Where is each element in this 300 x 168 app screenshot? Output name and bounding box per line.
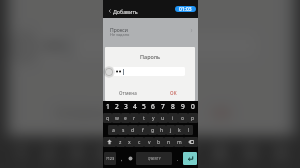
button[interactable]: q xyxy=(103,113,112,123)
button[interactable]: . xyxy=(174,152,181,165)
staticText: x xyxy=(128,139,131,146)
button[interactable]: Shift xyxy=(103,137,116,147)
button[interactable]: k xyxy=(175,125,184,135)
staticText: 6 xyxy=(151,102,155,111)
staticText: z xyxy=(119,139,122,146)
button[interactable]: Отмена xyxy=(117,88,139,98)
button[interactable]: y xyxy=(148,113,158,123)
button[interactable]: m xyxy=(174,137,184,147)
button[interactable]: ?123 xyxy=(104,152,116,165)
staticText: 2 xyxy=(115,102,119,111)
button[interactable]: Прокси xyxy=(103,18,198,44)
button[interactable]: 7 xyxy=(158,101,168,112)
staticText: g xyxy=(151,127,155,134)
button[interactable]: OK xyxy=(168,88,179,98)
button[interactable]: 5 xyxy=(139,101,148,112)
button[interactable]: z xyxy=(116,137,125,147)
staticText: h xyxy=(160,127,164,134)
button[interactable]: c xyxy=(134,137,144,147)
staticText: n xyxy=(167,139,171,146)
staticText: m xyxy=(177,139,182,146)
button[interactable]: v xyxy=(144,137,154,147)
button[interactable]: 1 xyxy=(6,136,34,168)
button[interactable]: 7 xyxy=(174,136,205,168)
button[interactable]: 2 xyxy=(112,101,121,112)
staticText: y xyxy=(152,115,155,122)
button[interactable]: 0 xyxy=(266,136,297,168)
staticText: 9 xyxy=(181,102,185,111)
staticText: OK xyxy=(170,90,177,96)
staticText: 01:03 xyxy=(179,6,192,12)
staticText: f xyxy=(142,127,144,134)
button[interactable]: 6 xyxy=(148,101,158,112)
button[interactable]: 8 xyxy=(205,136,236,168)
staticText: i xyxy=(172,115,174,122)
button[interactable]: Отмена xyxy=(49,96,116,127)
staticText: Добавить xyxy=(113,8,138,15)
staticText: v xyxy=(148,139,151,146)
staticText: QWERTY xyxy=(148,157,161,161)
button[interactable]: Back xyxy=(104,5,115,17)
button[interactable]: d xyxy=(128,125,138,135)
button[interactable]: a xyxy=(108,125,118,135)
staticText: 0 xyxy=(191,102,195,111)
staticText: 5 xyxy=(125,139,138,167)
button[interactable]: r xyxy=(130,113,139,123)
button[interactable]: f xyxy=(138,125,148,135)
staticText: Пароль xyxy=(12,0,288,10)
button[interactable]: s xyxy=(118,125,128,135)
staticText: , xyxy=(121,156,123,162)
button[interactable]: , xyxy=(118,152,125,165)
button[interactable]: 4 xyxy=(130,101,139,112)
staticText: s xyxy=(122,127,125,134)
staticText: l xyxy=(188,127,190,134)
button[interactable]: l xyxy=(184,125,193,135)
staticText: 3 xyxy=(124,102,128,111)
button[interactable]: 5 xyxy=(116,136,144,168)
staticText: 1 xyxy=(106,102,110,111)
staticText: a xyxy=(112,127,115,134)
staticText: 9 xyxy=(245,139,257,167)
button[interactable] xyxy=(113,67,185,76)
button[interactable]: 6 xyxy=(144,136,174,168)
button[interactable]: Emoji xyxy=(127,152,134,165)
button[interactable]: QWERTY xyxy=(136,152,172,165)
button[interactable]: e xyxy=(121,113,130,123)
button[interactable]: t xyxy=(139,113,148,123)
button[interactable]: 01:03 xyxy=(175,6,196,12)
button[interactable]: 8 xyxy=(168,101,178,112)
button[interactable]: i xyxy=(168,113,178,123)
staticText: d xyxy=(131,127,135,134)
button[interactable] xyxy=(37,32,257,59)
button[interactable]: 1 xyxy=(103,101,112,112)
button[interactable]: j xyxy=(166,125,175,135)
button[interactable]: g xyxy=(148,125,157,135)
button[interactable]: h xyxy=(157,125,166,135)
staticText: . xyxy=(177,156,179,162)
button[interactable]: x xyxy=(125,137,134,147)
button[interactable]: p xyxy=(188,113,198,123)
staticText: c xyxy=(138,139,141,146)
staticText: 7 xyxy=(161,102,165,111)
button[interactable]: 2 xyxy=(34,136,61,168)
button[interactable]: 9 xyxy=(178,101,188,112)
staticText: u xyxy=(161,115,165,122)
button[interactable]: 0 xyxy=(188,101,198,112)
button[interactable]: o xyxy=(178,113,188,123)
button[interactable]: u xyxy=(158,113,168,123)
button[interactable]: Backspace xyxy=(184,137,198,147)
staticText: 4 xyxy=(133,102,137,111)
staticText: Пароль xyxy=(105,53,195,60)
button[interactable]: 3 xyxy=(121,101,130,112)
button[interactable]: Enter xyxy=(183,152,197,165)
button[interactable]: b xyxy=(154,137,164,147)
button[interactable]: w xyxy=(112,113,121,123)
staticText: o xyxy=(181,115,185,122)
button[interactable]: 4 xyxy=(89,136,116,168)
button[interactable]: n xyxy=(164,137,174,147)
button[interactable]: 3 xyxy=(61,136,89,168)
button[interactable]: 9 xyxy=(236,136,266,168)
staticText: p xyxy=(191,115,195,122)
staticText: 5 xyxy=(142,102,146,111)
